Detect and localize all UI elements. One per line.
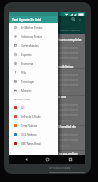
staticText: Tecnologia [21, 80, 34, 84]
button[interactable]: More options [77, 17, 83, 23]
button[interactable]: Generalidades [9, 41, 58, 50]
staticText: G1 [21, 106, 25, 110]
button[interactable]: Folha de S.Paulo [9, 112, 58, 121]
staticText: lorem ipsum dolor sit amet [49, 73, 79, 77]
staticText: lorem ipsum dolor sit amet [49, 83, 79, 87]
staticText: BBC News Brasil [21, 142, 41, 146]
staticText: Terra Noticias [21, 124, 37, 128]
staticText: Copa Mundial de [49, 124, 76, 129]
button[interactable]: Selecionar Fontes [9, 32, 58, 41]
staticText: Economia [21, 62, 34, 66]
staticText: Pilla [21, 71, 26, 75]
staticText: lorem ipsum dolor sit amet [49, 138, 79, 142]
staticText: Selecionar Fontes [21, 35, 42, 39]
button[interactable]: Search [70, 16, 77, 23]
staticText: GENERAL NEWS [14, 98, 31, 101]
button[interactable]: Tecnologia [9, 77, 58, 86]
staticText: lorem ipsum dolor sit amet [49, 113, 79, 117]
button[interactable]: Motores [9, 86, 58, 95]
staticText: En Melhor Pontos [21, 26, 43, 30]
staticText: Motores [21, 89, 32, 93]
staticText: lorem ipsum dolor sit amet [49, 103, 79, 107]
staticText: dos candidatos [49, 64, 74, 69]
staticText: Eleicao em [49, 94, 67, 99]
button[interactable]: UOL Noticias [9, 130, 58, 139]
staticText: lorem ipsum dolor sit amet [49, 78, 79, 82]
button[interactable]: Recents [66, 155, 75, 164]
button[interactable]: Esportes [9, 50, 58, 59]
staticText: Ver noticia completa [49, 89, 70, 93]
staticText: Ver noticia completa [49, 144, 70, 148]
staticText: Ver noticia completa [49, 62, 70, 66]
button[interactable]: Economia [9, 59, 58, 68]
button[interactable]: Terra Noticias [9, 121, 58, 130]
staticText: Noticias ao-online [49, 151, 78, 156]
staticText: lorem ipsum dolor sit amet [49, 133, 79, 137]
staticText: Generalidades [21, 44, 39, 48]
staticText: lorem ipsum dolor sit amet [49, 46, 79, 50]
staticText: Cobertura completa [49, 37, 82, 42]
button[interactable]: En Melhor Pontos [9, 23, 58, 32]
staticText: ULTIMAS NOTICIAS [60, 28, 81, 31]
button[interactable]: Home [43, 155, 52, 164]
staticText: Ver noticia completa [49, 119, 70, 123]
staticText: lorem ipsum dolor sit amet [49, 56, 79, 60]
staticText: Esportes [21, 53, 32, 57]
staticText: Ver noticia completa [49, 166, 70, 170]
staticText: Folha de S.Paulo [21, 115, 41, 119]
staticText: lorem ipsum dolor sit amet [49, 160, 79, 164]
button[interactable]: Pilla [9, 68, 58, 77]
staticText: lorem ipsum dolor sit amet [49, 108, 79, 112]
staticText: lorem ipsum dolor sit amet [49, 51, 79, 55]
staticText: UOL Noticias [21, 133, 37, 137]
button[interactable]: G1 [9, 103, 58, 112]
button[interactable]: Back [22, 155, 31, 164]
staticText: Yeni Agrario Ile Grid [12, 18, 41, 22]
button[interactable]: BBC News Brasil [9, 139, 58, 148]
